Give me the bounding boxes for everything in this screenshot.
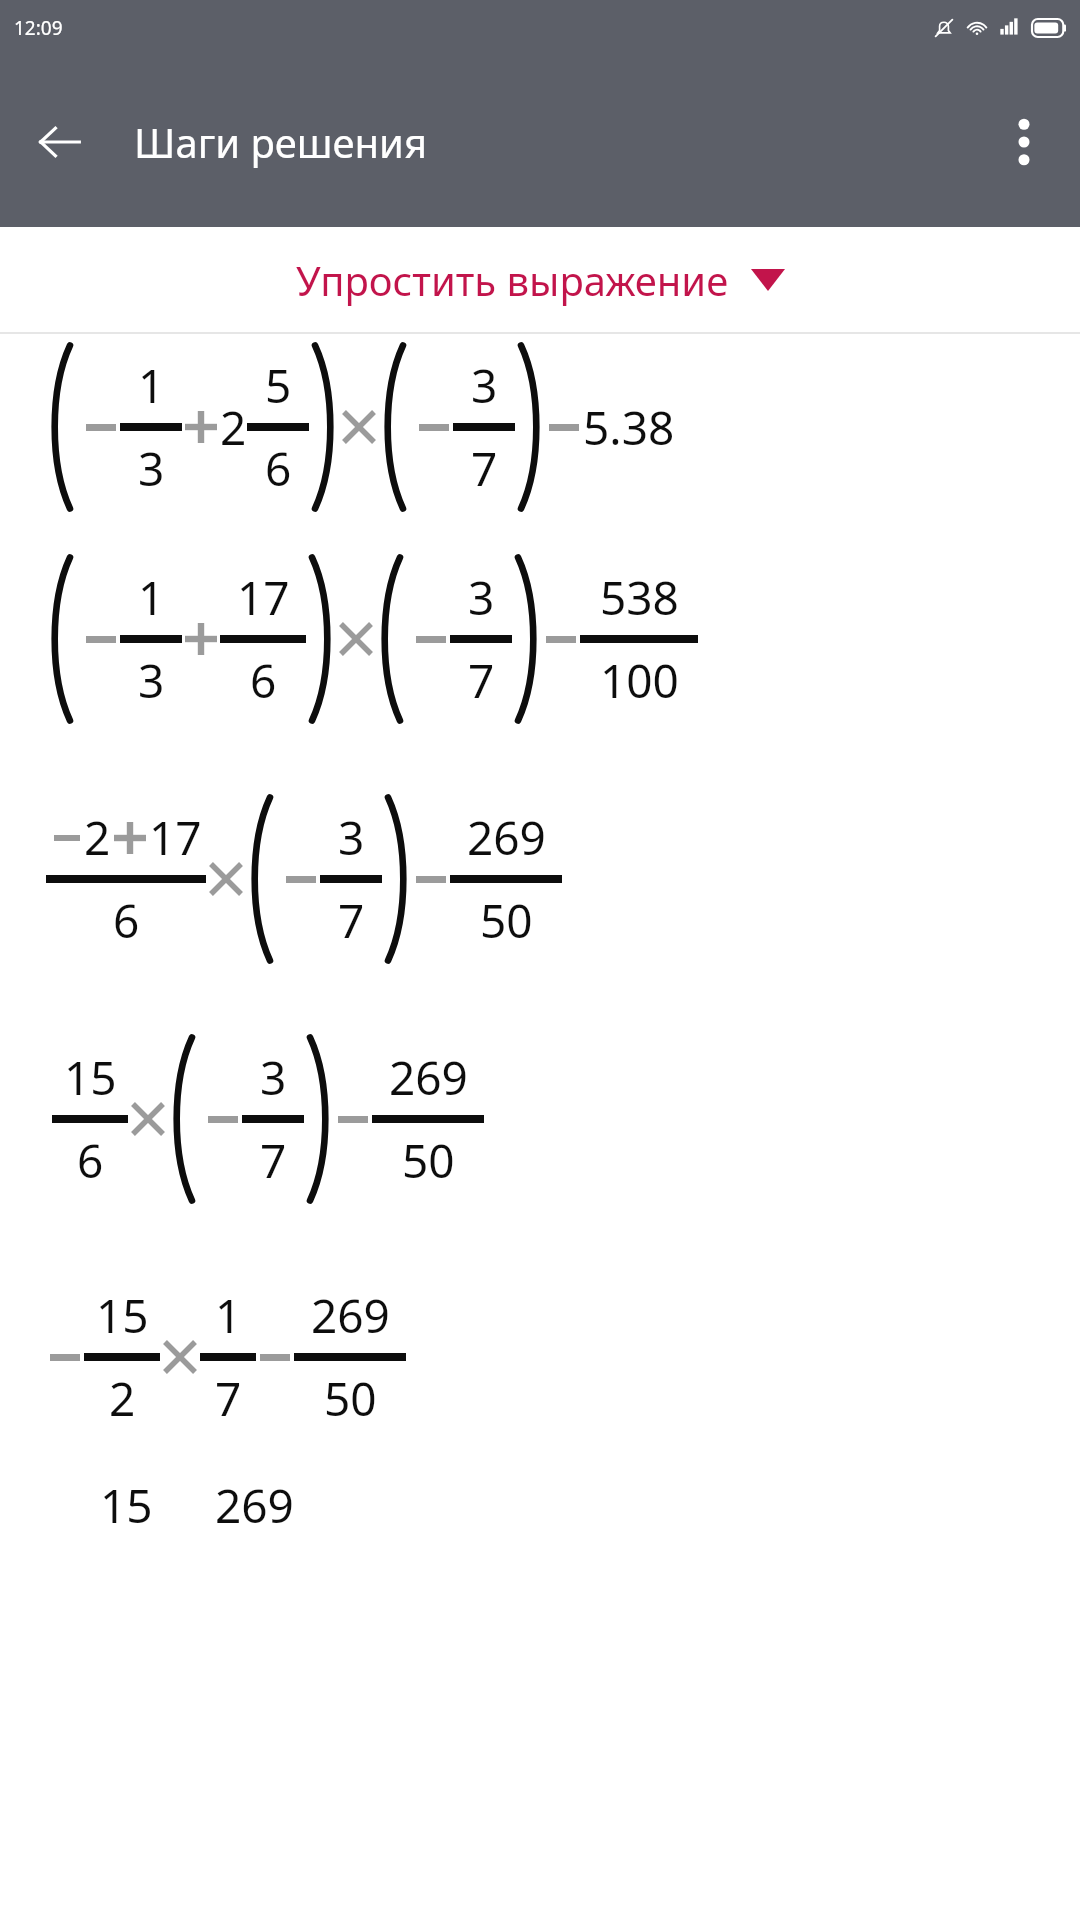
button[interactable]: 15 [0,1239,1080,1474]
staticText: 6 [77,1129,104,1192]
staticText: 6 [265,437,292,500]
staticText: 5.38 [583,396,675,459]
staticText: 3 [471,354,498,417]
staticText: 15 [100,1474,153,1537]
button[interactable]: 15 [0,1474,1080,1594]
staticText: Упростить выражение [296,253,729,307]
staticText: 7 [471,437,498,500]
staticText: 7 [338,889,365,952]
button[interactable]: 15 [0,999,1080,1239]
staticText: 7 [468,649,495,712]
button[interactable]: Back [26,108,94,176]
staticText: 6 [113,889,140,952]
staticText: 5 [265,354,292,417]
button[interactable]: 1 [0,519,1080,759]
staticText: 7 [215,1367,242,1430]
staticText: 269 [311,1284,390,1347]
staticText: 6 [250,649,277,712]
staticText: 269 [467,806,546,869]
staticText: 2 [220,396,247,459]
staticText: 269 [389,1046,468,1109]
staticText: 1 [138,354,165,417]
staticText: 1 [138,566,165,629]
staticText: 7 [260,1129,287,1192]
staticText: 15 [64,1046,117,1109]
staticText: 2 [109,1367,136,1430]
staticText: 17 [237,566,290,629]
staticText: 15 [96,1284,149,1347]
staticText: Шаги решения [134,115,428,169]
staticText: 3 [138,437,165,500]
button[interactable]: Упростить выражение [0,227,1080,332]
button[interactable]: More options [990,108,1058,176]
staticText: 50 [402,1129,455,1192]
staticText: 3 [260,1046,287,1109]
staticText: 17 [149,806,202,869]
staticText: 50 [324,1367,377,1430]
staticText: 538 [600,566,679,629]
staticText: 100 [600,649,679,712]
button[interactable]: 2 [0,759,1080,999]
staticText: 3 [138,649,165,712]
staticText: 12:09 [14,15,63,41]
button[interactable]: 1 [0,334,1080,519]
staticText: 3 [468,566,495,629]
staticText: 3 [338,806,365,869]
staticText: 1 [215,1284,242,1347]
staticText: 50 [480,889,533,952]
staticText: 2 [84,806,111,869]
staticText: 269 [215,1474,294,1537]
